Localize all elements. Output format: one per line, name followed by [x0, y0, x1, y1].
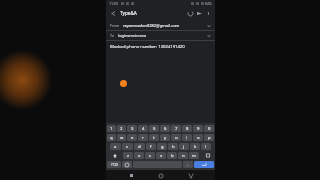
button[interactable]: i	[182, 134, 192, 141]
staticText: d	[138, 144, 141, 150]
staticText: Blocked phone number: 13024191420	[110, 44, 185, 50]
staticText: From	[110, 23, 120, 28]
staticText: To	[110, 33, 115, 38]
staticText: 1	[110, 126, 113, 132]
staticText: 0	[208, 126, 211, 132]
staticText: 6	[164, 126, 167, 132]
button[interactable]: l	[201, 143, 211, 150]
button[interactable]: Send	[195, 9, 204, 18]
button[interactable]: t	[149, 134, 159, 141]
staticText: n	[182, 153, 185, 159]
button[interactable]: b	[167, 152, 177, 159]
staticText: 5	[153, 126, 156, 132]
staticText: x	[138, 153, 141, 159]
button[interactable]: 8	[182, 125, 192, 132]
staticText: y	[164, 135, 167, 141]
button[interactable]: Enter	[194, 161, 214, 168]
button[interactable]: j	[179, 143, 189, 150]
button[interactable]: u	[171, 134, 181, 141]
button[interactable]: Home	[156, 171, 165, 180]
staticText: f	[150, 144, 152, 150]
staticText: ?123	[111, 163, 118, 167]
button[interactable]: c	[145, 152, 155, 159]
button[interactable]: e	[127, 134, 137, 141]
staticText: k	[194, 144, 197, 150]
button[interactable]: From	[106, 21, 215, 31]
button[interactable]: o	[193, 134, 203, 141]
button[interactable]: 5	[149, 125, 159, 132]
staticText: q	[110, 135, 113, 141]
button[interactable]: 4	[138, 125, 148, 132]
staticText: l	[205, 144, 207, 150]
button[interactable]: x	[134, 152, 144, 159]
button[interactable]: s	[122, 143, 133, 150]
button[interactable]: Back	[109, 9, 118, 18]
button[interactable]: k	[190, 143, 200, 150]
staticText: 4	[142, 126, 145, 132]
button[interactable]: 3	[127, 125, 137, 132]
button[interactable]: Attach file	[186, 9, 195, 18]
button[interactable]: y	[160, 134, 170, 141]
button[interactable]: r	[138, 134, 148, 141]
button[interactable]: d	[134, 143, 145, 150]
staticText: s	[126, 144, 129, 150]
staticText: m	[192, 153, 196, 159]
button[interactable]: q	[107, 134, 116, 141]
staticText: h	[172, 144, 175, 150]
button[interactable]: h	[168, 143, 178, 150]
staticText: e	[131, 135, 134, 141]
button[interactable]: z	[123, 152, 133, 159]
staticText: o	[197, 135, 200, 141]
button[interactable]: 6	[160, 125, 170, 132]
staticText: 11:05	[109, 1, 119, 6]
button[interactable]: Shift	[107, 152, 122, 159]
button[interactable]: .	[183, 161, 193, 168]
staticText: r	[142, 135, 144, 141]
button[interactable]: 7	[171, 125, 181, 132]
staticText: 2	[120, 126, 123, 132]
staticText: c	[149, 153, 152, 159]
button[interactable]: 1	[107, 125, 116, 132]
staticText: w	[120, 135, 124, 141]
staticText: t	[153, 135, 155, 141]
button[interactable]: m	[189, 152, 199, 159]
button[interactable]: 0	[204, 125, 214, 132]
staticText: j	[183, 144, 185, 150]
button[interactable]: p	[204, 134, 214, 141]
staticText: b	[171, 153, 174, 159]
staticText: v	[160, 153, 163, 159]
button[interactable]: 2	[117, 125, 126, 132]
staticText: 9	[197, 126, 200, 132]
staticText: p	[208, 135, 211, 141]
staticText: z	[127, 153, 129, 159]
button[interactable]: ?123	[107, 161, 121, 168]
button[interactable]: f	[146, 143, 156, 150]
button[interactable]: g	[157, 143, 167, 150]
button[interactable]: v	[156, 152, 166, 159]
staticText: i	[186, 135, 188, 141]
button[interactable]: More options	[204, 9, 212, 17]
button[interactable]: Recents	[127, 171, 136, 180]
button[interactable]: Emoji	[122, 161, 132, 168]
staticText: .	[187, 162, 189, 168]
staticText: u	[175, 135, 178, 141]
button[interactable]: w	[117, 134, 126, 141]
staticText: 8	[186, 126, 189, 132]
staticText: Type&A	[120, 10, 137, 16]
button[interactable]: To	[106, 31, 215, 41]
staticText: a	[114, 144, 117, 150]
button[interactable]: a	[110, 143, 121, 150]
button[interactable]: n	[178, 152, 188, 159]
button[interactable]: Back	[186, 171, 195, 180]
button[interactable]: Backspace	[200, 152, 214, 159]
staticText: rayanmadon8282@gmail.com	[123, 23, 180, 28]
staticText: loginsmsir.com	[118, 33, 147, 38]
staticText: 3	[131, 126, 134, 132]
staticText: g	[161, 144, 164, 150]
button[interactable]: 9	[193, 125, 203, 132]
staticText: 7	[175, 126, 178, 132]
staticText: 84%	[205, 1, 212, 6]
